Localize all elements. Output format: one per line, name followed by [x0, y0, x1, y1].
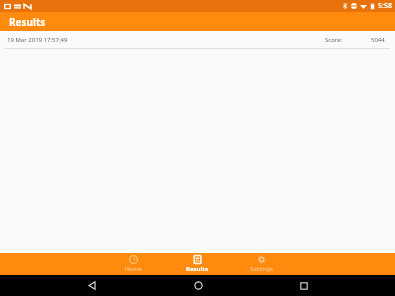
button[interactable]: Home	[183, 275, 213, 296]
button[interactable]: Settings	[229, 253, 293, 275]
button[interactable]: Home	[101, 253, 165, 275]
staticText: Score:	[325, 36, 343, 44]
staticText: Results	[186, 265, 208, 273]
button[interactable]: Results	[165, 253, 229, 275]
staticText: 19 Mar 2019 17:57:49	[7, 36, 68, 44]
button[interactable]: Recent apps	[289, 275, 319, 296]
staticText: Home	[124, 265, 142, 273]
button[interactable]: Back	[77, 275, 107, 296]
button[interactable]: 19 Mar 2019 17:57:49	[0, 31, 395, 49]
staticText: Settings	[250, 265, 273, 273]
staticText: 5044	[371, 36, 385, 44]
staticText: 5:58	[378, 1, 392, 11]
staticText: Results	[9, 15, 46, 29]
